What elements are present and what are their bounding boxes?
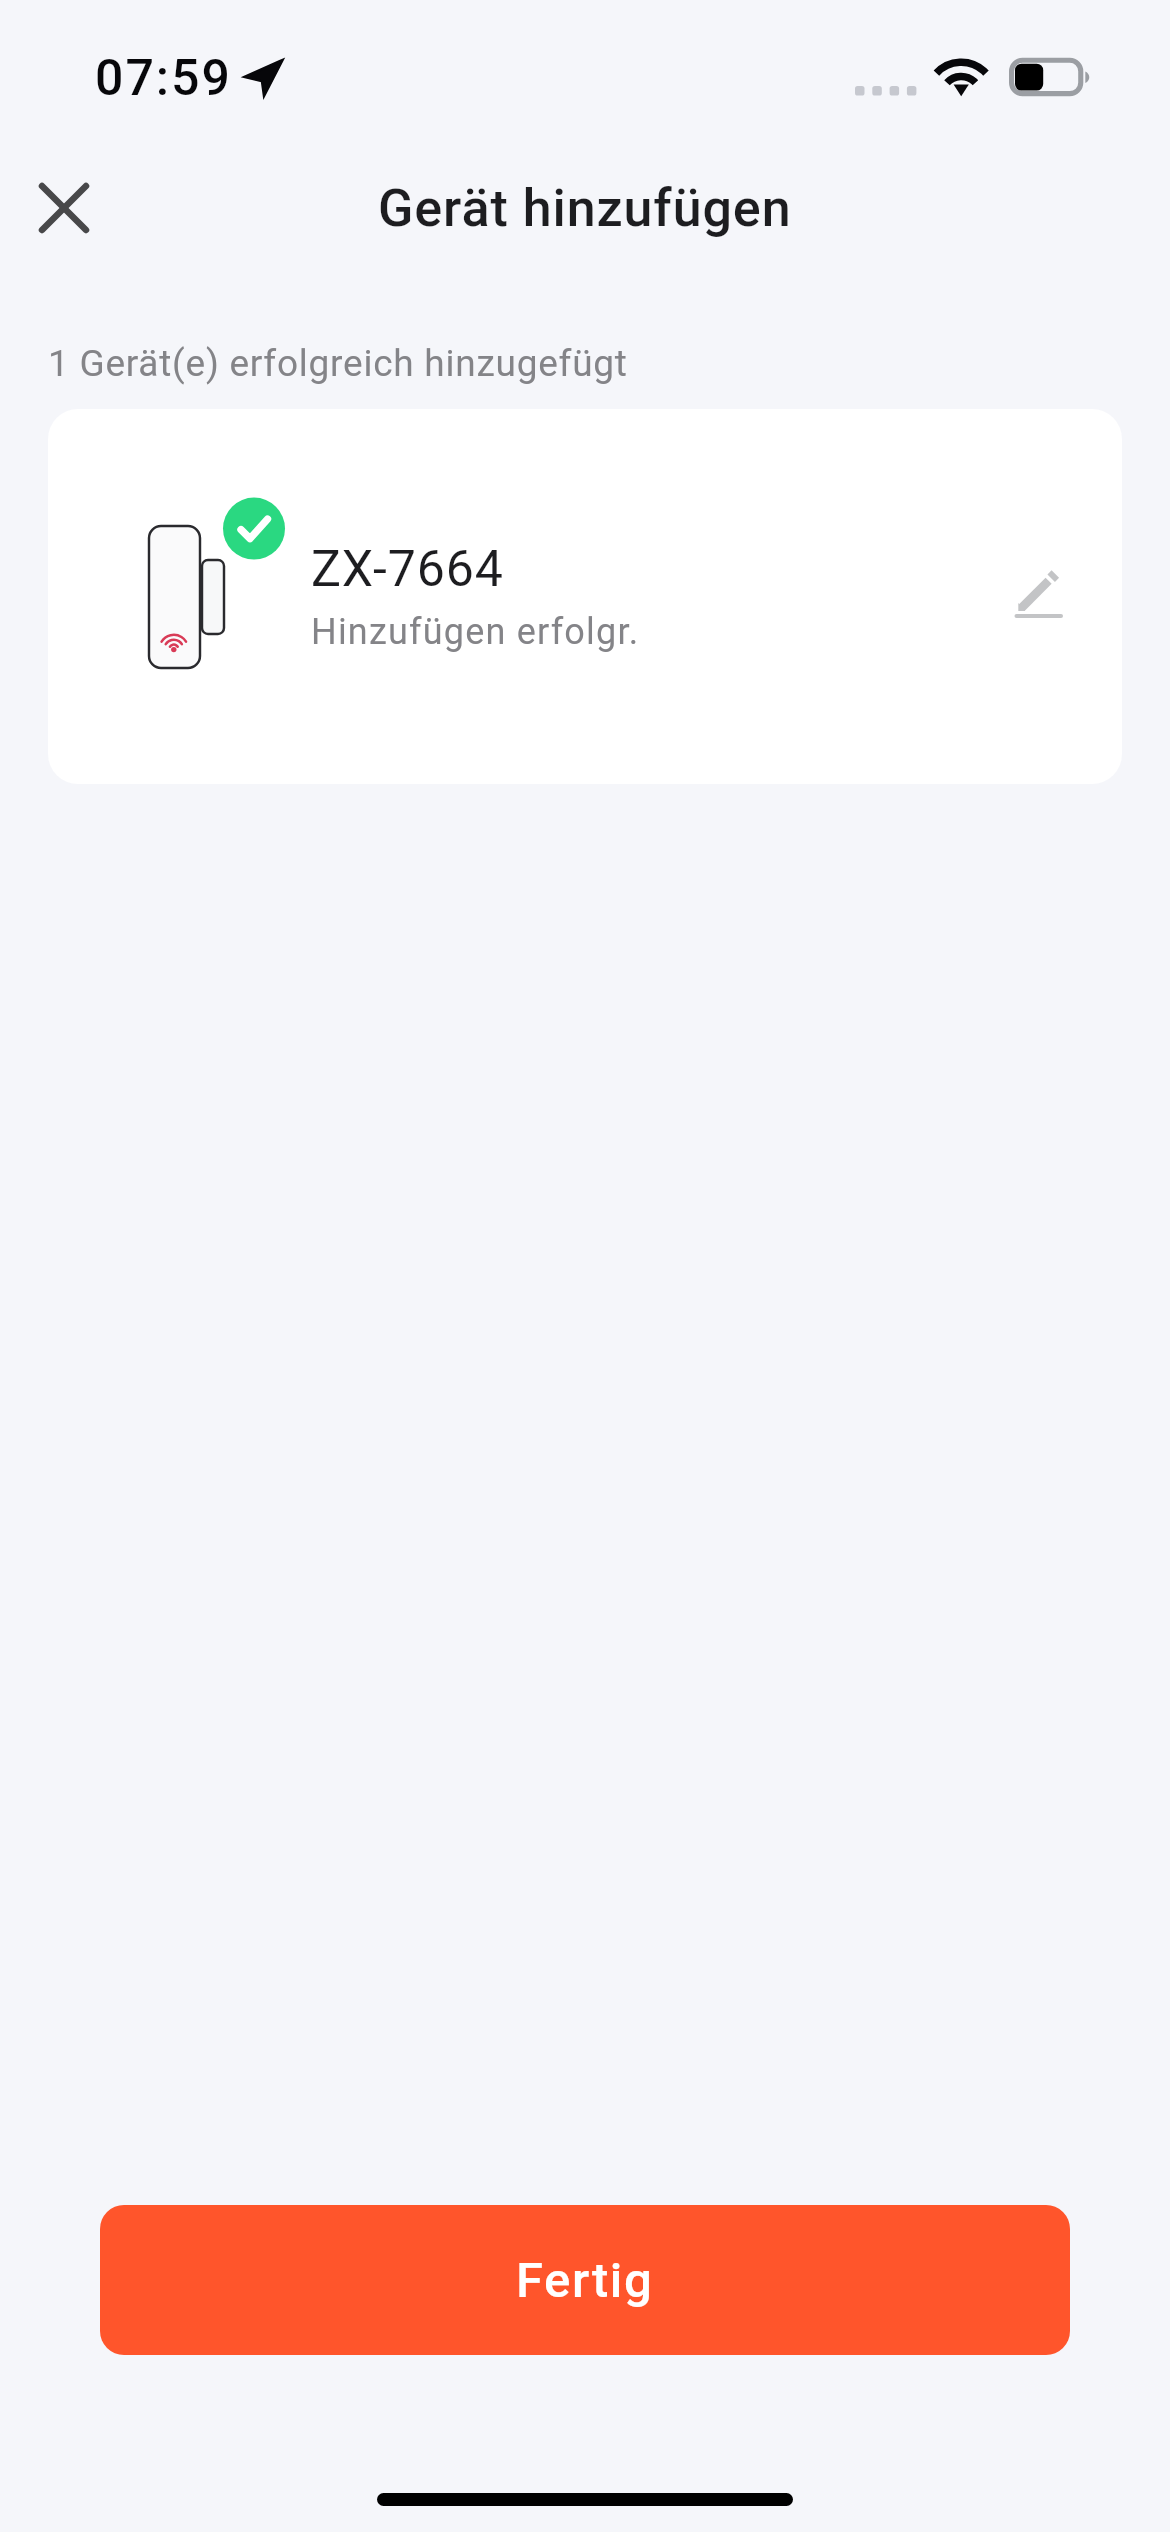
button[interactable]: Close (39, 183, 89, 233)
staticText: Hinzufügen erfolgr. (311, 611, 640, 653)
button[interactable]: ZX-7664 (48, 409, 1122, 784)
button[interactable]: Fertig (100, 2205, 1070, 2355)
staticText: Gerät hinzufügen (378, 178, 792, 239)
staticText: Fertig (516, 2252, 654, 2309)
staticText: 1 Gerät(e) erfolgreich hinzugefügt (48, 342, 628, 385)
staticText: 07:59 (95, 49, 232, 108)
staticText: ZX-7664 (311, 540, 504, 599)
button[interactable]: Rename device (1005, 565, 1075, 635)
